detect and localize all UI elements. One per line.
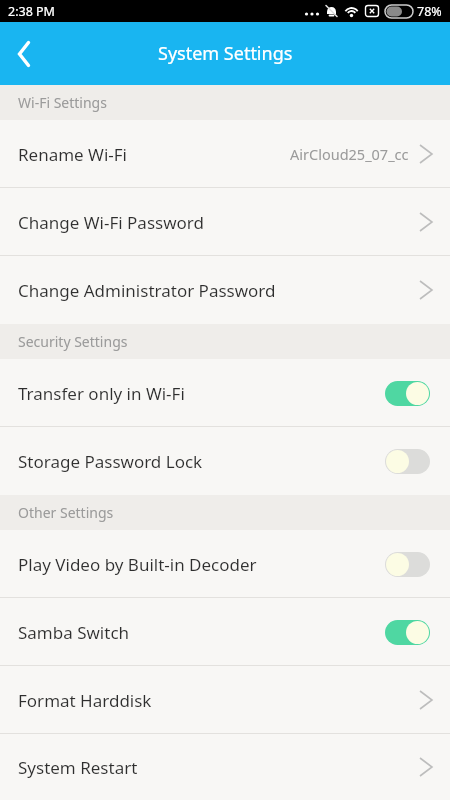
staticText: 2:38 PM [8,3,55,20]
button[interactable]: Storage Password Lock [0,427,450,495]
staticText: System Restart [18,756,138,779]
button[interactable] [6,36,42,72]
staticText: Wi-Fi Settings [18,93,107,112]
button[interactable]: Rename Wi-Fi [0,120,450,188]
staticText: Rename Wi-Fi [18,143,127,166]
staticText: Format Harddisk [18,689,152,712]
button[interactable]: Play Video by Built-in Decoder [0,530,450,598]
button[interactable] [385,552,430,577]
staticText: Transfer only in Wi-Fi [18,382,185,405]
button[interactable]: Transfer only in Wi-Fi [0,359,450,427]
staticText: Storage Password Lock [18,450,203,473]
staticText: 78% [417,3,442,20]
button[interactable] [385,449,430,474]
staticText: Security Settings [18,332,128,351]
button[interactable]: System Restart [0,734,450,800]
staticText: AirCloud25_07_cc [290,144,409,164]
staticText: Change Administrator Password [18,279,276,302]
button[interactable]: Format Harddisk [0,666,450,734]
button[interactable] [385,620,430,645]
button[interactable]: Change Administrator Password [0,256,450,324]
staticText: System Settings [158,41,293,66]
staticText: Samba Switch [18,621,130,644]
button[interactable]: Samba Switch [0,598,450,666]
staticText: Change Wi-Fi Password [18,211,204,234]
staticText: Other Settings [18,503,114,522]
button[interactable] [385,381,430,406]
staticText: Play Video by Built-in Decoder [18,553,257,576]
button[interactable]: Change Wi-Fi Password [0,188,450,256]
